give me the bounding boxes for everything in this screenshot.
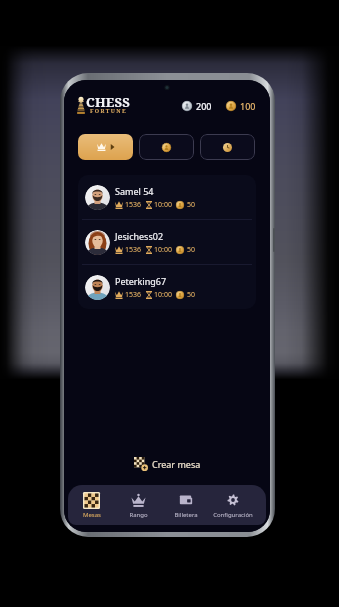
button[interactable]: Samel 54: [78, 175, 256, 219]
button[interactable]: Billetera: [162, 485, 209, 525]
staticText: 1536: [125, 245, 142, 255]
button[interactable]: Torneos: [139, 134, 194, 160]
staticText: 1536: [125, 200, 142, 210]
button[interactable]: Jesichess02: [78, 220, 256, 264]
button[interactable]: Configuración: [209, 485, 256, 525]
staticText: FORTUNE: [90, 107, 127, 114]
button[interactable]: Mesas: [78, 134, 133, 160]
button[interactable]: Peterking67: [78, 265, 256, 309]
button[interactable]: Crear mesa: [128, 454, 207, 474]
staticText: Jesichess02: [115, 230, 164, 242]
staticText: Crear mesa: [152, 458, 201, 470]
staticText: CHESS: [86, 93, 130, 111]
staticText: Rango: [129, 511, 148, 519]
staticText: 50: [187, 200, 196, 210]
button[interactable]: Chess Fortune: [77, 93, 130, 118]
staticText: 100: [240, 100, 256, 112]
button[interactable]: Monedas plata: [182, 100, 212, 112]
staticText: Configuración: [213, 511, 253, 519]
staticText: Samel 54: [115, 185, 154, 197]
staticText: Mesas: [83, 511, 101, 519]
staticText: 200: [196, 100, 212, 112]
staticText: Peterking67: [115, 275, 167, 287]
staticText: 1536: [125, 290, 142, 300]
staticText: 50: [187, 245, 196, 255]
staticText: 10:00: [154, 200, 172, 210]
staticText: 50: [187, 290, 196, 300]
button[interactable]: Rango: [115, 485, 162, 525]
button[interactable]: Monedas oro: [226, 100, 256, 112]
staticText: 10:00: [154, 290, 172, 300]
staticText: Billetera: [174, 511, 198, 519]
button[interactable]: Historial: [200, 134, 255, 160]
button[interactable]: Mesas: [68, 485, 115, 525]
staticText: 10:00: [154, 245, 172, 255]
